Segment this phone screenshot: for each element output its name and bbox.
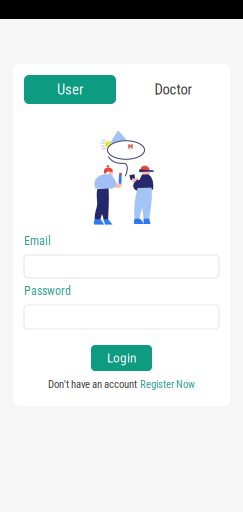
staticText: Email <box>24 234 51 248</box>
staticText: Doctor <box>154 81 191 98</box>
button[interactable]: Doctor <box>127 75 219 104</box>
staticText: Password <box>24 284 71 298</box>
button[interactable]: Register Now <box>140 378 195 390</box>
button[interactable]: User <box>24 75 116 104</box>
staticText: Login <box>107 350 136 366</box>
staticText: Don't have an account <box>48 378 137 390</box>
staticText: Register Now <box>140 378 195 390</box>
staticText: User <box>57 81 83 98</box>
button[interactable]: Login <box>91 345 152 371</box>
